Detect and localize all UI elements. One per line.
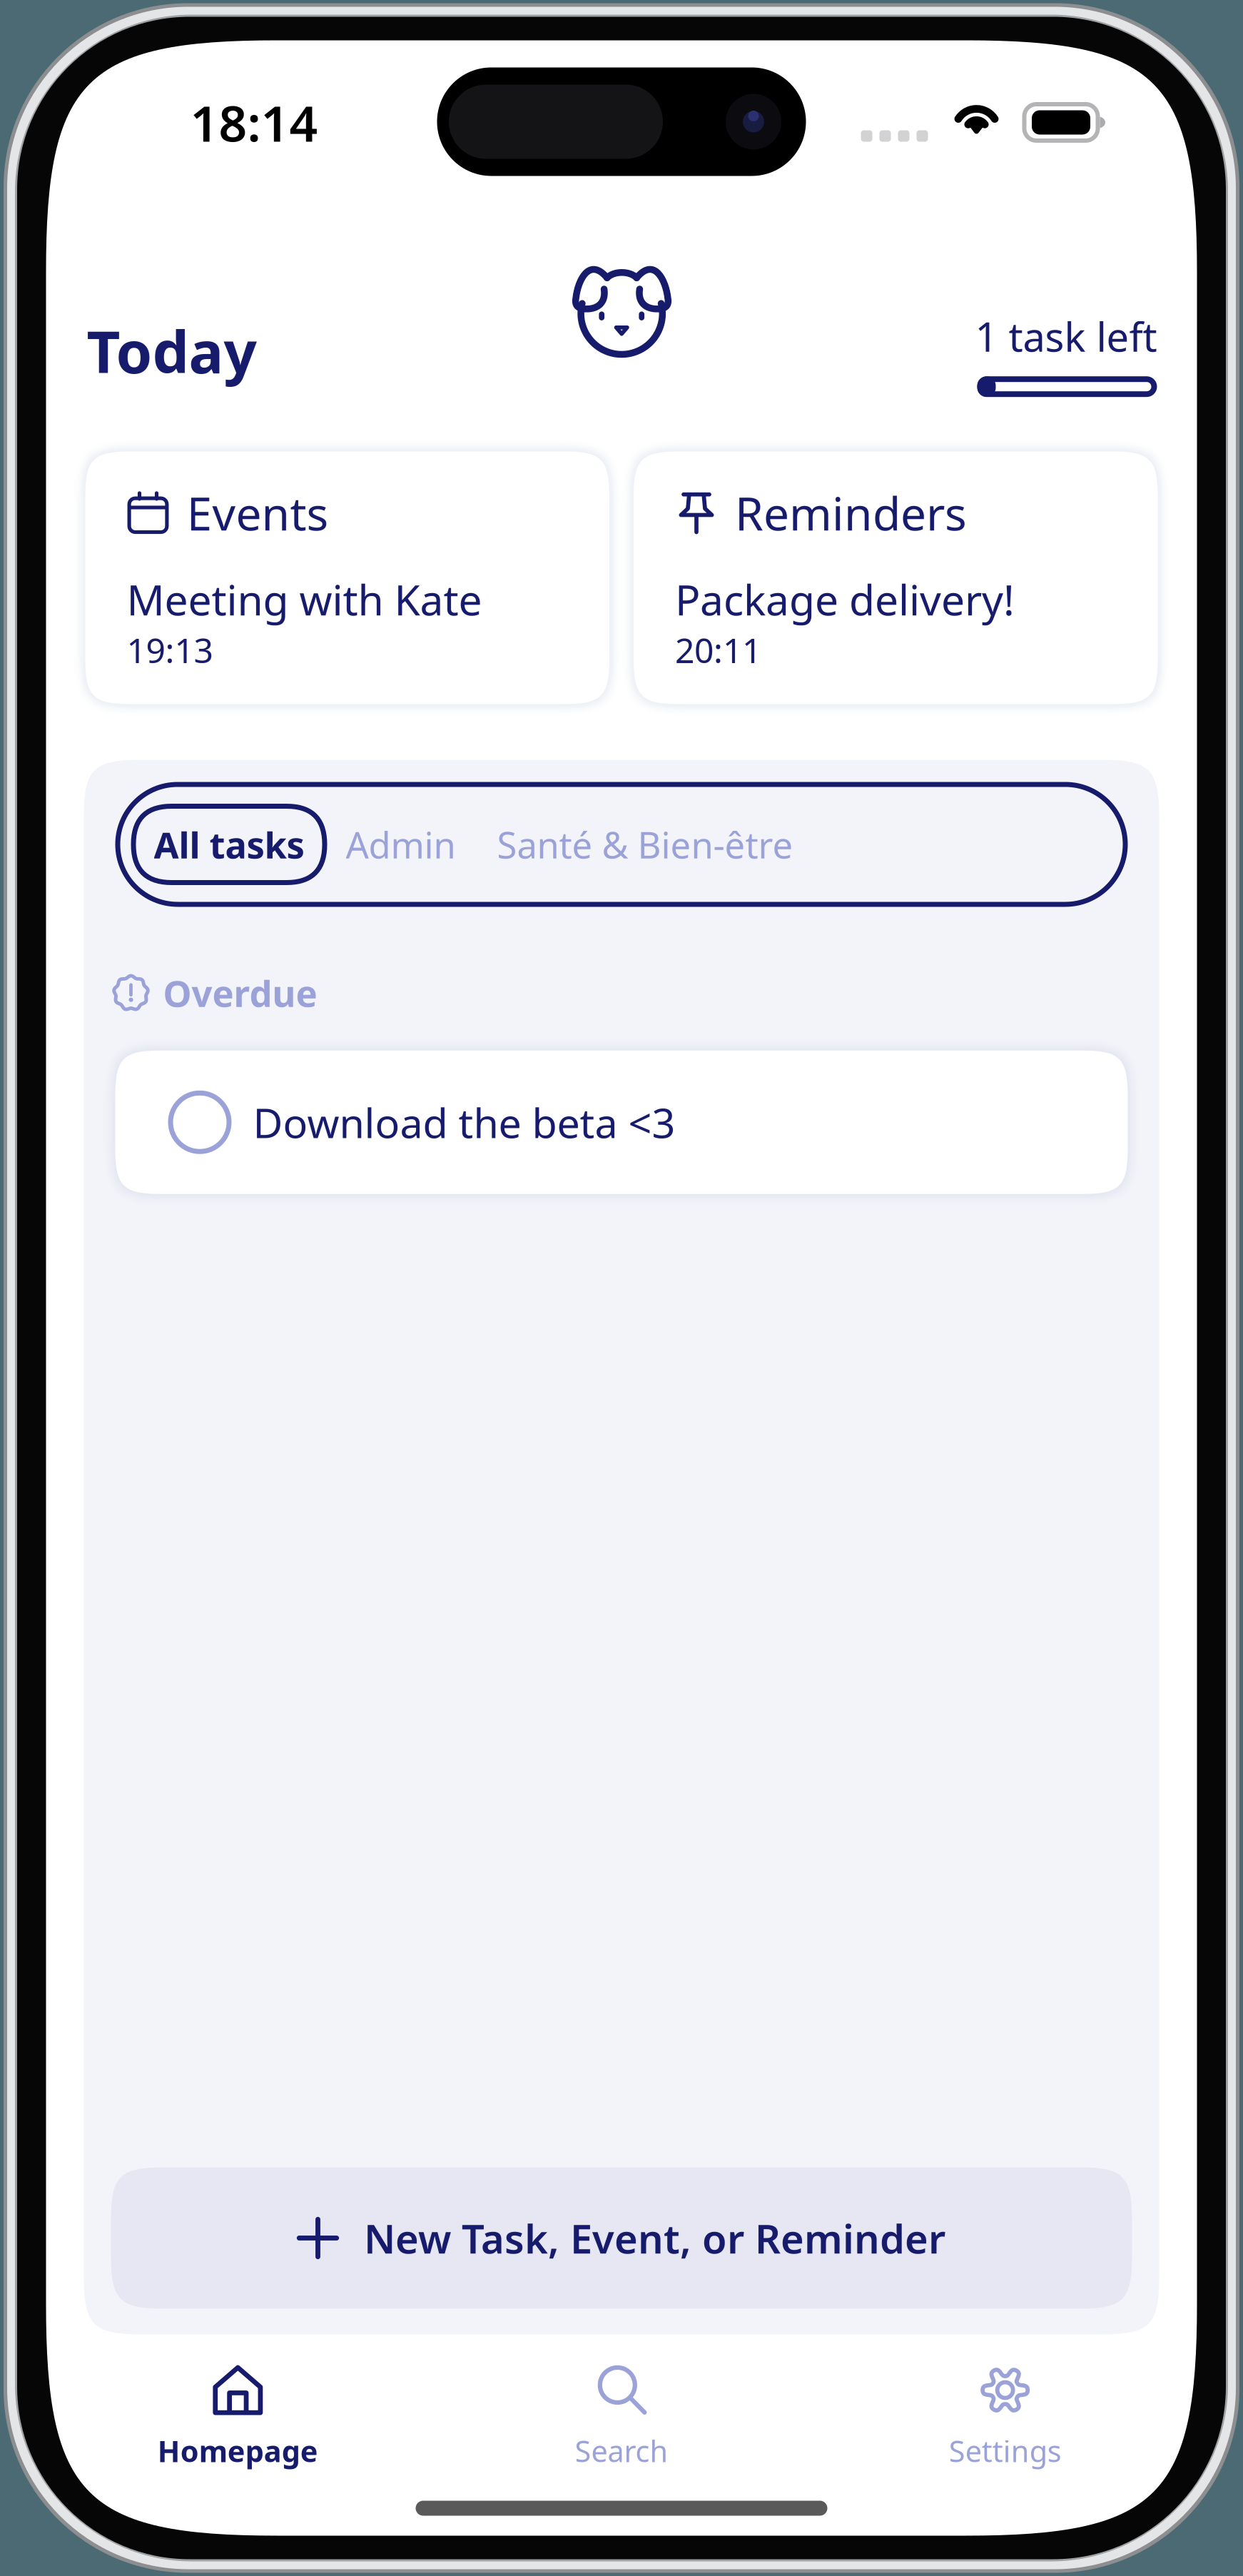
staticText: Homepage <box>158 2431 318 2470</box>
button[interactable]: Admin <box>327 804 466 885</box>
button[interactable]: Scuttle mascot <box>565 249 679 358</box>
staticText: Search <box>575 2431 668 2470</box>
staticText: Admin <box>346 820 456 868</box>
staticText: 19:13 <box>127 627 213 672</box>
staticText: Download the beta <3 <box>253 1095 675 1149</box>
staticText: Today <box>87 312 257 389</box>
staticText: 1 task left <box>975 310 1157 363</box>
staticText: Reminders <box>735 483 967 543</box>
staticText: Meeting with Kate <box>127 571 482 627</box>
staticText: New Task, Event, or Reminder <box>364 2211 945 2265</box>
staticText: All tasks <box>154 820 304 868</box>
button[interactable]: Search <box>430 2369 813 2466</box>
button[interactable]: Download the beta <3 <box>115 1051 1128 1194</box>
staticText: Settings <box>949 2431 1062 2470</box>
staticText: 20:11 <box>675 627 761 672</box>
staticText: Package delivery! <box>675 571 1015 627</box>
button[interactable]: All tasks <box>131 804 327 885</box>
staticText: Events <box>187 483 329 543</box>
staticText: 18:14 <box>190 90 318 155</box>
staticText: Santé & Bien-être <box>497 820 793 868</box>
button[interactable]: Events <box>85 451 609 704</box>
button[interactable]: New Task, Event, or Reminder <box>111 2167 1132 2309</box>
button[interactable]: Reminders <box>634 451 1158 704</box>
staticText: Overdue <box>163 969 317 1017</box>
button[interactable]: Settings <box>813 2369 1197 2466</box>
button[interactable]: Homepage <box>46 2369 430 2466</box>
button[interactable]: Santé & Bien-être <box>466 804 813 885</box>
